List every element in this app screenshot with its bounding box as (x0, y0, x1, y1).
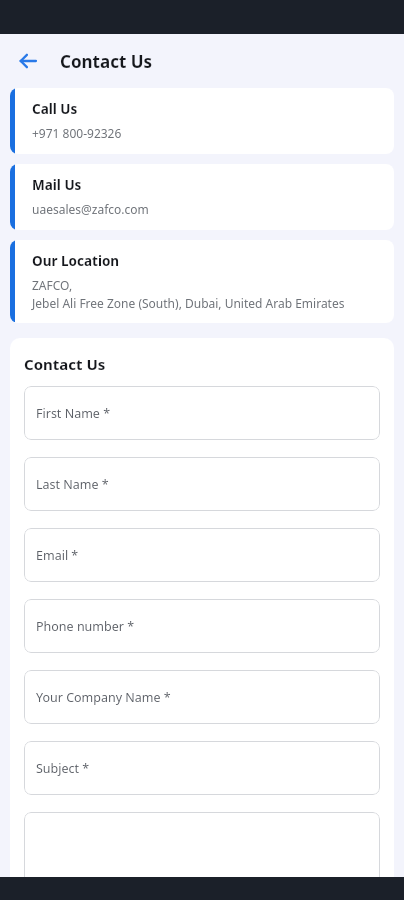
staticText: Call Us (32, 100, 78, 118)
button[interactable]: Last Name * (24, 457, 380, 511)
staticText: uaesales@zafco.com (32, 201, 149, 217)
staticText: Phone number * (36, 618, 135, 635)
button[interactable]: First Name * (24, 386, 380, 440)
staticText: Email * (36, 547, 79, 564)
staticText: Contact Us (24, 354, 106, 374)
button[interactable]: Phone number * (24, 599, 380, 653)
button[interactable]: Your Company Name * (24, 670, 380, 724)
staticText: +971 800-92326 (32, 125, 122, 141)
staticText: ZAFCO, (32, 277, 73, 293)
button[interactable]: Our Location (10, 240, 394, 323)
staticText: Contact Us (60, 50, 153, 73)
button[interactable]: Email * (24, 528, 380, 582)
button[interactable]: Call Us (10, 88, 394, 154)
button[interactable]: Back (10, 43, 46, 79)
staticText: Subject * (36, 760, 90, 777)
button[interactable]: Mail Us (10, 164, 394, 230)
staticText: Last Name * (36, 476, 109, 493)
staticText: Your Company Name * (36, 689, 171, 706)
staticText: Our Location (32, 252, 120, 270)
staticText: Mail Us (32, 176, 82, 194)
button[interactable]: Subject * (24, 741, 380, 795)
staticText: Your Question * (36, 874, 130, 891)
staticText: Jebel Ali Free Zone (South), Dubai, Unit… (32, 295, 345, 311)
button[interactable]: Your Question * (24, 812, 380, 900)
staticText: First Name * (36, 405, 111, 422)
